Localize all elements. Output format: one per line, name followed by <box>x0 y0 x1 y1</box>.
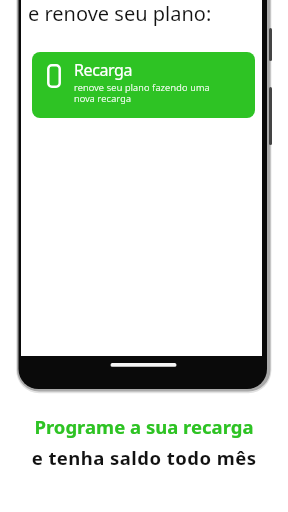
staticText: renove seu plano fazendo uma nova recarg… <box>74 81 210 105</box>
staticText: Recarga <box>74 59 133 81</box>
staticText: Programe a sua recarga <box>0 414 288 439</box>
staticText: e renove seu plano: <box>28 0 212 27</box>
staticText: e tenha saldo todo mês <box>0 445 288 470</box>
